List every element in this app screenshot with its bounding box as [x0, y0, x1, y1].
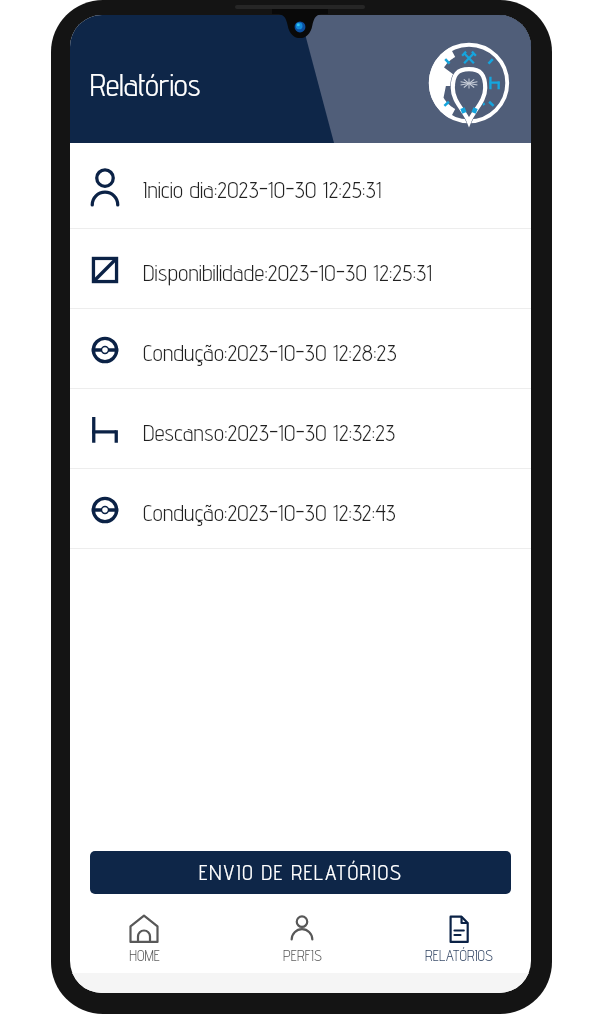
button[interactable]: Condução:2023-10-30 12:28:23	[70, 309, 531, 389]
button[interactable]: Relatórios	[389, 905, 529, 973]
staticText: Relatórios	[90, 66, 201, 103]
staticText: HOME	[129, 947, 160, 965]
button[interactable]: Perfis	[232, 905, 372, 973]
button[interactable]: Descanso:2023-10-30 12:32:23	[70, 389, 531, 469]
button[interactable]: Home	[74, 905, 214, 973]
staticText: Inicio dia:2023-10-30 12:25:31	[143, 176, 382, 203]
staticText: Disponibilidade:2023-10-30 12:25:31	[143, 259, 433, 286]
staticText: ENVIO DE RELATÓRIOS	[199, 860, 403, 885]
staticText: Descanso:2023-10-30 12:32:23	[143, 419, 396, 446]
button[interactable]: ENVIO DE RELATÓRIOS	[90, 851, 511, 894]
other: Logótipo da aplicação	[427, 41, 511, 125]
staticText: PERFIS	[283, 947, 322, 965]
button[interactable]: Inicio dia:2023-10-30 12:25:31	[70, 143, 531, 229]
staticText: Condução:2023-10-30 12:28:23	[143, 339, 397, 366]
button[interactable]: Disponibilidade:2023-10-30 12:25:31	[70, 229, 531, 309]
staticText: Condução:2023-10-30 12:32:43	[143, 499, 396, 526]
staticText: RELATÓRIOS	[425, 947, 493, 965]
button[interactable]: Condução:2023-10-30 12:32:43	[70, 469, 531, 549]
